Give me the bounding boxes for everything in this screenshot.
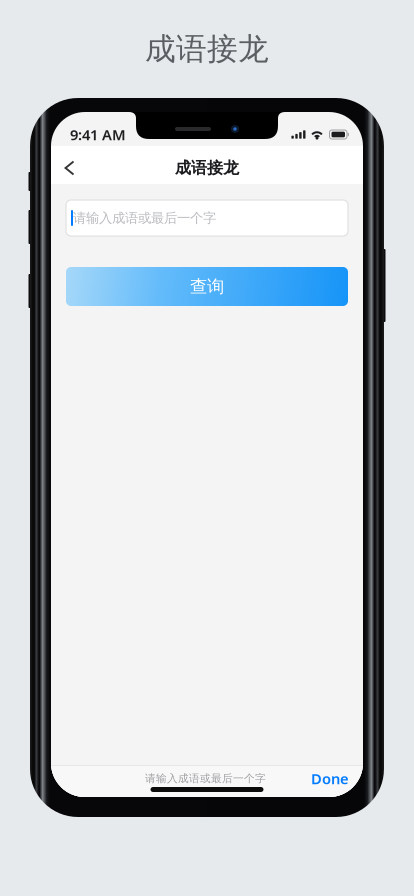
staticText: 成语接龙 [175,158,239,178]
staticText: 请输入成语或最后一个字 [145,772,266,785]
staticText: 成语接龙 [145,30,269,68]
staticText: Done [311,769,349,788]
button[interactable]: Done [297,765,349,792]
staticText: 9:41 AM [70,125,126,144]
staticText: 请输入成语或最后一个字 [73,210,216,226]
button[interactable]: 查询 [66,267,348,306]
button[interactable]: Back [54,146,84,184]
staticText: 查询 [190,276,224,297]
